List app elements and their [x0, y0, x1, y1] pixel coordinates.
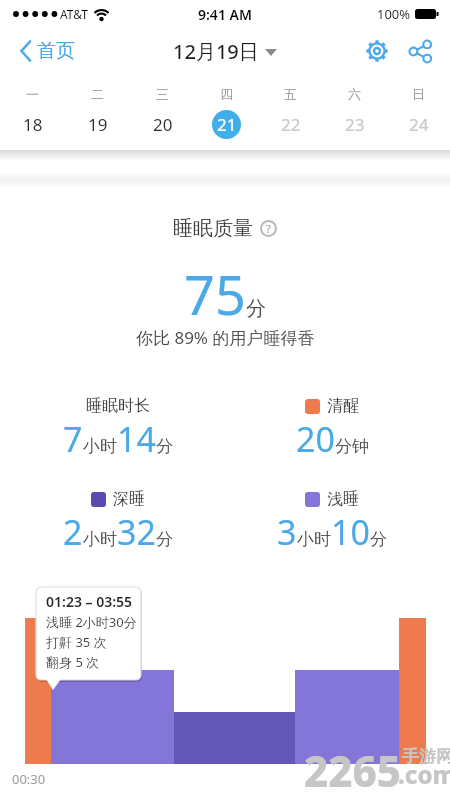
button[interactable]: 五 — [258, 86, 322, 139]
staticText: 9:41 AM — [198, 5, 252, 24]
staticText: AT&T — [60, 6, 88, 22]
staticText: 分 — [246, 296, 266, 321]
staticText: 打鼾 35 次 — [46, 633, 107, 651]
staticText: 24 — [409, 113, 429, 136]
staticText: 一 — [26, 86, 39, 102]
button[interactable]: 二 — [65, 86, 130, 139]
button[interactable]: 日 — [386, 86, 450, 139]
staticText: 14 — [117, 416, 156, 462]
staticText: 小时 — [83, 529, 117, 550]
staticText: .com — [398, 758, 450, 791]
staticText: 手游网 — [402, 746, 450, 767]
staticText: 六 — [348, 86, 361, 102]
button[interactable]: 清醒 — [225, 396, 439, 462]
staticText: 20 — [296, 416, 335, 462]
staticText: 22 — [281, 113, 301, 136]
staticText: 日 — [412, 86, 425, 102]
staticText: 二 — [91, 86, 104, 102]
staticText: 你比 89% 的用户睡得香 — [136, 326, 315, 349]
staticText: 18 — [23, 113, 43, 136]
staticText: 20 — [153, 113, 173, 136]
button[interactable]: ? — [260, 220, 277, 237]
button[interactable]: 一 — [0, 86, 65, 139]
staticText: 浅睡 2小时30分 — [46, 613, 137, 631]
staticText: 分钟 — [335, 436, 369, 457]
staticText: 睡眠质量 — [173, 216, 253, 241]
staticText: 7 — [63, 416, 83, 462]
button[interactable]: 四 — [194, 86, 258, 139]
button[interactable]: 深睡 — [11, 489, 225, 555]
staticText: 睡眠时长 — [86, 396, 150, 416]
staticText: 清醒 — [327, 396, 359, 416]
staticText: 三 — [156, 86, 169, 102]
staticText: 32 — [117, 509, 156, 555]
staticText: 小时 — [83, 436, 117, 457]
button[interactable]: 12月19日 — [173, 38, 277, 65]
staticText: 12月19日 — [173, 38, 259, 65]
staticText: 深睡 — [113, 489, 145, 509]
staticText: 2 — [63, 509, 83, 555]
staticText: 翻身 5 次 — [46, 653, 100, 671]
button[interactable]: 睡眠时长 — [11, 396, 225, 462]
button[interactable]: 浅睡 — [225, 489, 439, 555]
button[interactable]: 首页 — [20, 39, 75, 63]
staticText: 23 — [345, 113, 365, 136]
button[interactable] — [365, 39, 389, 63]
staticText: 19 — [88, 113, 108, 136]
staticText: 首页 — [37, 39, 75, 63]
staticText: 分 — [156, 436, 173, 457]
button[interactable]: 六 — [322, 86, 386, 139]
staticText: 00:30 — [12, 770, 46, 788]
staticText: 75 — [184, 257, 246, 331]
staticText: 分 — [156, 529, 173, 550]
staticText: 3 — [277, 509, 297, 555]
staticText: 21 — [217, 113, 237, 136]
staticText: 01:23 – 03:55 — [46, 592, 133, 611]
staticText: 10 — [331, 509, 370, 555]
staticText: 小时 — [297, 529, 331, 550]
button[interactable]: 三 — [130, 86, 194, 139]
staticText: ? — [266, 221, 271, 236]
staticText: 浅睡 — [327, 489, 359, 509]
staticText: 分 — [370, 529, 387, 550]
staticText: 五 — [284, 86, 297, 102]
button[interactable] — [409, 40, 432, 63]
staticText: 100% — [377, 5, 411, 23]
staticText: 四 — [220, 86, 233, 102]
staticText: 2265 — [304, 742, 402, 799]
